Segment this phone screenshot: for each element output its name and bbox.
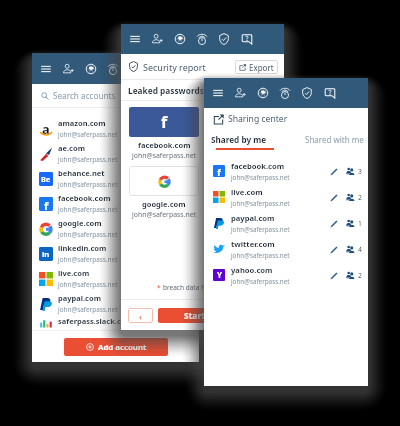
staticText: f <box>161 111 168 133</box>
button[interactable]: Y <box>204 262 368 288</box>
staticText: john@saferpass.net <box>58 230 118 239</box>
staticText: Shared by me <box>211 134 267 145</box>
staticText: Shared with me <box>305 134 364 145</box>
button[interactable]: Dashboard <box>252 78 274 108</box>
staticText: john@saferpass.net <box>132 210 197 219</box>
staticText: live.com <box>231 187 263 197</box>
staticText: 4 <box>358 245 362 254</box>
staticText: john@saferpass.net <box>58 180 118 189</box>
button[interactable]: f <box>204 158 368 184</box>
button[interactable]: f <box>129 107 199 137</box>
staticText: Have I Been Pwned <box>218 283 278 292</box>
staticText: Security report <box>143 61 206 73</box>
button[interactable]: Edit <box>327 269 340 282</box>
staticText: Be <box>41 174 51 184</box>
staticText: paypal.com <box>231 213 275 223</box>
button[interactable]: Be <box>32 166 199 191</box>
staticText: in <box>42 249 50 259</box>
staticText: saferpass.slack.com <box>58 316 133 326</box>
staticText: facebook.com <box>231 161 285 171</box>
button[interactable]: Shared with 2 people <box>346 193 362 202</box>
staticText: john@saferpass.net <box>58 130 118 139</box>
staticText: john@saferpass.net <box>58 155 118 164</box>
button[interactable]: Shared with 3 people <box>346 167 362 176</box>
button[interactable]: live.com <box>32 266 199 291</box>
staticText: twitter.com <box>231 239 275 249</box>
staticText: google.com <box>58 218 102 228</box>
button[interactable]: a <box>32 116 199 141</box>
staticText: f <box>217 166 221 177</box>
staticText: john@saferpass.net <box>231 251 290 260</box>
button[interactable]: Dashboard <box>169 24 191 54</box>
staticText: john@saferpass.net <box>132 151 197 160</box>
button[interactable]: Password generator <box>102 53 124 84</box>
staticText: Add account <box>98 342 147 353</box>
button[interactable]: Security report <box>213 24 235 54</box>
staticText: 2 <box>358 271 362 280</box>
button[interactable]: ae.com <box>32 141 199 166</box>
button[interactable]: twitter.com <box>204 236 368 262</box>
button[interactable]: Previous <box>128 308 153 323</box>
staticText: in <box>235 172 248 190</box>
staticText: facebook.com <box>138 140 191 150</box>
button[interactable]: Shared with 1 people <box>346 219 362 228</box>
staticText: john@saferpass.net <box>231 277 290 286</box>
button[interactable]: f <box>32 191 199 216</box>
staticText: Leaked passwords (4) <box>128 85 217 96</box>
staticText: Export <box>249 62 274 73</box>
button[interactable]: Help <box>319 78 341 108</box>
staticText: behance.net <box>58 168 105 178</box>
staticText: linkedin.com <box>58 243 107 253</box>
staticText: john@saferpass.net <box>209 210 274 219</box>
staticText: facebook.com <box>58 193 111 203</box>
button[interactable]: Shared by me <box>204 130 274 148</box>
button[interactable]: Export <box>235 60 278 74</box>
button[interactable]: in <box>206 166 276 196</box>
button[interactable]: Edit <box>327 217 340 230</box>
button[interactable]: Start protecting <box>158 308 277 323</box>
staticText: 1 <box>358 219 362 228</box>
staticText: live.com <box>58 268 90 278</box>
staticText: john@saferpass.net <box>58 328 118 330</box>
button[interactable]: Add account <box>57 53 79 84</box>
button[interactable]: Edit <box>327 191 340 204</box>
button[interactable]: Shared with 2 people <box>346 271 362 280</box>
button[interactable] <box>206 107 276 137</box>
staticText: a <box>42 120 50 134</box>
button[interactable]: Add account <box>229 78 251 108</box>
button[interactable]: in <box>32 241 199 266</box>
button[interactable]: Security report <box>296 78 318 108</box>
button[interactable]: paypal.com <box>204 210 368 236</box>
staticText: Start protecting <box>184 310 252 322</box>
button[interactable]: paypal.com <box>32 291 199 316</box>
button[interactable]: Menu <box>207 78 229 108</box>
staticText: john@saferpass.net <box>231 199 290 208</box>
staticText: f <box>44 198 49 211</box>
button[interactable]: Menu <box>124 24 146 54</box>
button[interactable]: Help <box>236 24 258 54</box>
staticText: ‹ <box>139 310 142 322</box>
button[interactable] <box>129 166 199 196</box>
staticText: yahoo.com <box>231 265 273 275</box>
button[interactable]: Add account <box>146 24 168 54</box>
button[interactable]: google.com <box>32 216 199 241</box>
button[interactable]: Dashboard <box>80 53 102 84</box>
staticText: paypal.com <box>58 293 101 303</box>
button[interactable]: Search accounts <box>32 84 199 107</box>
button[interactable]: Password generator <box>274 78 296 108</box>
staticText: john@saferpass.net <box>58 305 118 314</box>
staticText: * <box>157 283 161 292</box>
staticText: john@saferpass.net <box>58 280 118 289</box>
button[interactable]: Password generator <box>191 24 213 54</box>
button[interactable]: Menu <box>35 53 57 84</box>
button[interactable]: live.com <box>204 184 368 210</box>
staticText: twitter.com <box>219 140 263 150</box>
button[interactable]: Edit <box>327 165 340 178</box>
button[interactable]: Add account <box>64 338 168 356</box>
button[interactable]: Shared with me <box>301 130 368 148</box>
button[interactable]: saferpass.slack.com <box>32 316 199 330</box>
staticText: Y <box>217 270 222 281</box>
button[interactable]: Edit <box>327 243 340 256</box>
button[interactable]: Shared with 4 people <box>346 245 362 254</box>
